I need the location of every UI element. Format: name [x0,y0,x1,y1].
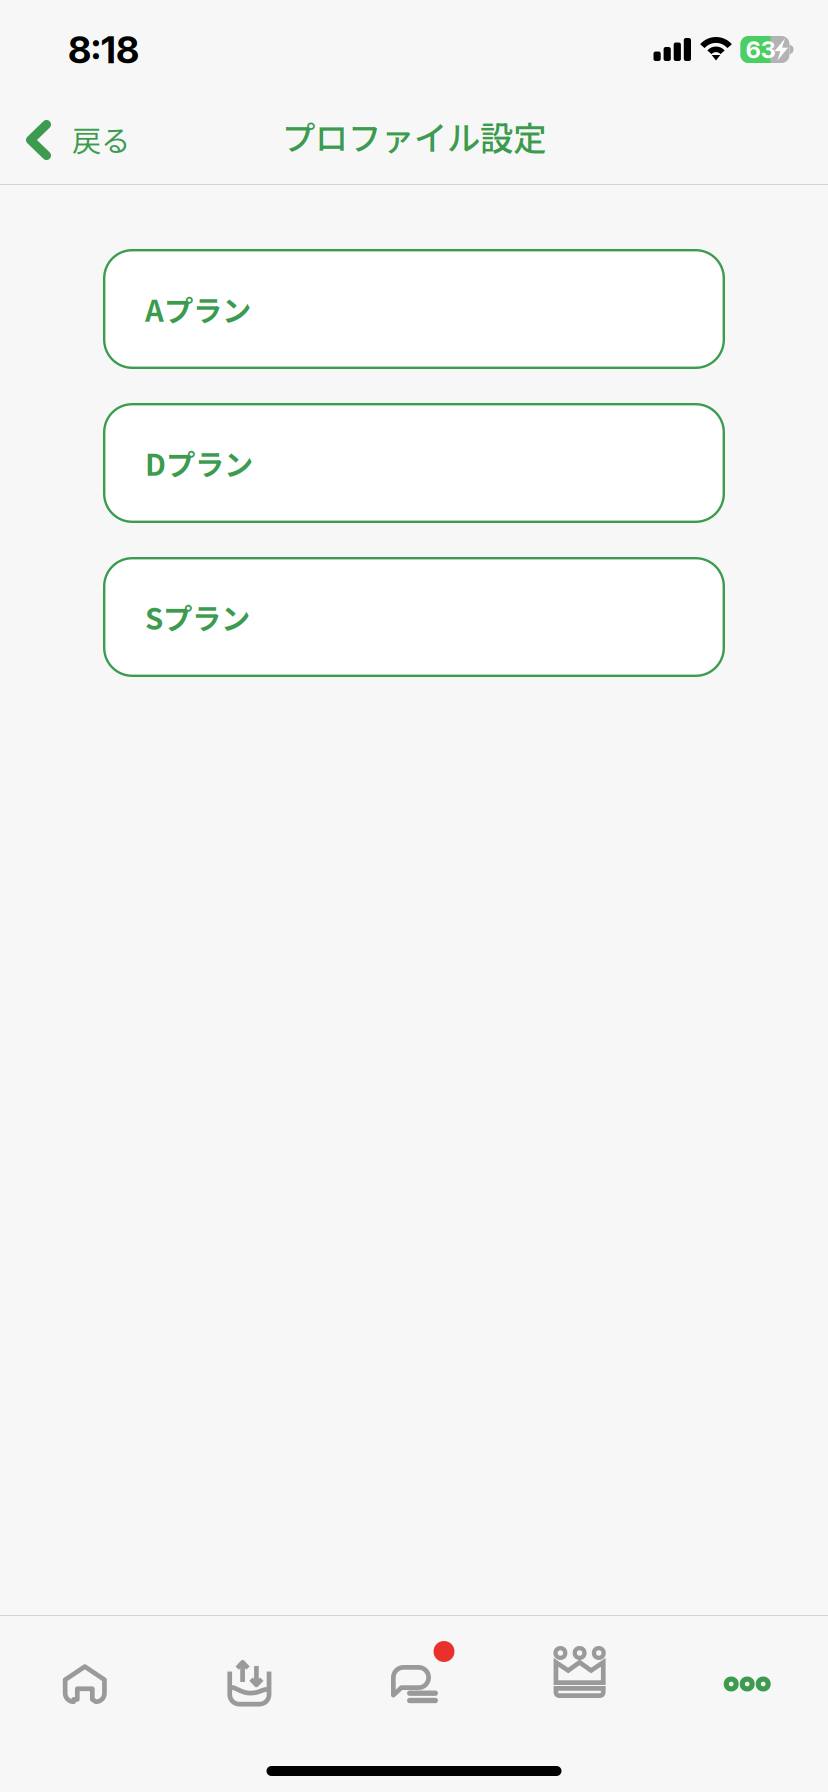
staticText: Aプラン [145,288,251,330]
button[interactable]: 送受信 [166,1616,331,1712]
button[interactable]: その他 [662,1616,828,1712]
button[interactable]: 戻る [0,98,148,174]
button[interactable]: ランク [497,1616,662,1712]
staticText: プロファイル設定 [282,112,546,160]
button[interactable]: Aプラン [103,249,725,369]
staticText: 戻る [72,118,130,160]
staticText: Sプラン [145,596,250,638]
button[interactable]: Dプラン [103,403,725,523]
button[interactable]: チャット [331,1616,497,1712]
button[interactable]: Sプラン [103,557,725,677]
staticText: 8:18 [68,27,139,72]
staticText: 63 [745,35,775,64]
button[interactable]: ホーム [0,1616,166,1712]
staticText: Dプラン [145,442,253,484]
